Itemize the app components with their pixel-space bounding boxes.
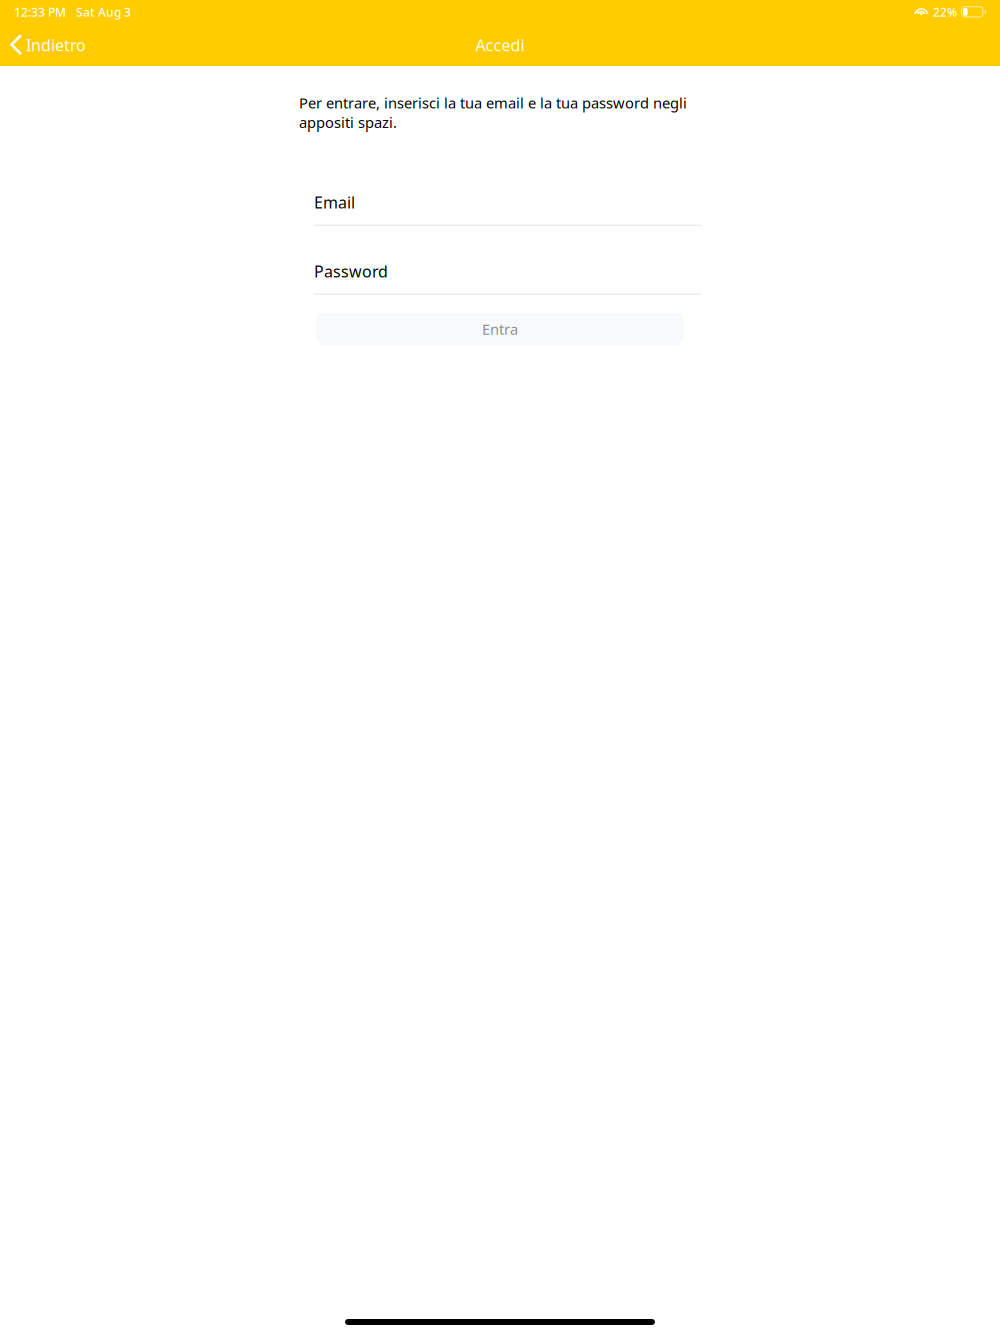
staticText: 12:33 PM [14, 4, 66, 20]
staticText: Password [314, 261, 388, 282]
button[interactable]: Indietro [0, 24, 98, 66]
staticText: Entra [482, 319, 518, 339]
staticText: Sat Aug 3 [76, 4, 131, 20]
staticText: Per entrare, inserisci la tua email e la… [299, 93, 687, 132]
staticText: Indietro [26, 34, 86, 56]
staticText: Accedi [475, 34, 524, 56]
staticText: 22% [933, 4, 957, 20]
button[interactable]: Entra [316, 313, 684, 345]
button[interactable]: Email [314, 182, 701, 226]
staticText: Email [314, 192, 355, 213]
button[interactable]: Password [314, 251, 701, 295]
